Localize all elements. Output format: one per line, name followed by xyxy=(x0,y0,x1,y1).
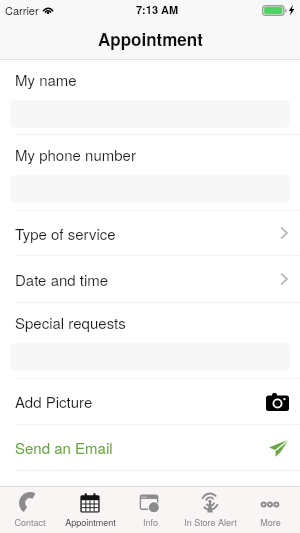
button[interactable]: Send an Email xyxy=(0,425,300,470)
other: Add Picture xyxy=(266,393,289,411)
button[interactable]: Appointment xyxy=(60,486,120,533)
staticText: My phone number xyxy=(15,144,136,165)
staticText: Appointment xyxy=(65,516,116,529)
button[interactable]: Type of service xyxy=(0,211,300,255)
button[interactable]: More xyxy=(240,486,300,533)
staticText: My name xyxy=(15,69,77,90)
staticText: Date and time xyxy=(15,269,109,290)
staticText: Special requests xyxy=(15,312,126,333)
button[interactable]: Contact xyxy=(0,486,60,533)
staticText: Info xyxy=(143,516,158,529)
staticText: Appointment xyxy=(98,27,203,51)
button[interactable]: Info xyxy=(120,486,180,533)
staticText: More xyxy=(260,516,281,529)
staticText: Contact xyxy=(14,516,46,529)
staticText: Type of service xyxy=(15,223,116,244)
staticText: Send an Email xyxy=(15,437,113,458)
staticText: Add Picture xyxy=(15,391,93,412)
staticText: In Store Alert xyxy=(184,516,237,529)
button[interactable]: Add Picture xyxy=(0,379,300,424)
staticText: 7:13 AM xyxy=(136,2,179,18)
button[interactable]: In Store Alert xyxy=(180,486,240,533)
other: Send an Email xyxy=(269,439,289,457)
button[interactable]: Date and time xyxy=(0,256,300,302)
staticText: Carrier xyxy=(5,2,39,18)
